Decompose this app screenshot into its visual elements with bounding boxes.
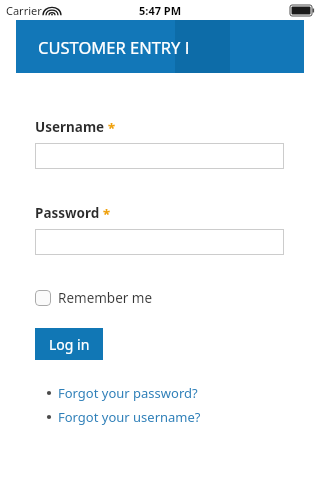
staticText: Username bbox=[35, 118, 105, 136]
staticText: Remember me bbox=[58, 289, 153, 307]
staticText: * bbox=[103, 205, 111, 223]
staticText: Carrier bbox=[6, 3, 42, 18]
staticText: CUSTOMER ENTRY PORTAL bbox=[38, 36, 188, 58]
staticText: Password bbox=[35, 204, 100, 222]
button[interactable] bbox=[35, 229, 284, 255]
staticText: Forgot your username? bbox=[58, 408, 201, 426]
button[interactable]: Forgot your password? bbox=[35, 384, 284, 402]
staticText: * bbox=[108, 119, 116, 137]
button[interactable]: Remember me bbox=[35, 289, 153, 307]
button[interactable]: Log in bbox=[35, 328, 103, 360]
staticText: Log in bbox=[49, 335, 90, 354]
button[interactable]: CUSTOMER ENTRY PORTAL bbox=[16, 20, 304, 73]
staticText: Forgot your password? bbox=[58, 384, 198, 402]
button[interactable] bbox=[35, 143, 284, 169]
button[interactable]: Forgot your username? bbox=[35, 408, 284, 426]
staticText: 5:47 PM bbox=[139, 3, 182, 18]
